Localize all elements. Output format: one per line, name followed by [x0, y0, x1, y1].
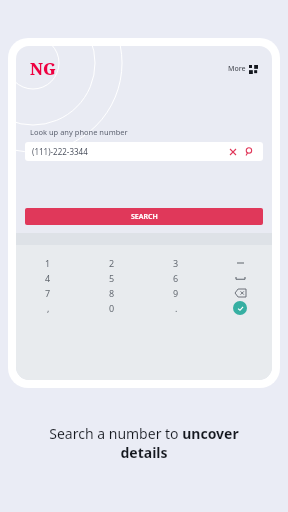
staticText: More: [228, 64, 246, 74]
staticText: 6: [173, 272, 179, 284]
button[interactable]: Space: [208, 270, 272, 285]
button[interactable]: 5: [80, 270, 144, 285]
staticText: 5: [109, 272, 115, 284]
button[interactable]: (111)-222-3344: [25, 142, 263, 161]
button[interactable]: 0: [80, 300, 144, 315]
button[interactable]: 3: [144, 255, 208, 270]
staticText: 2: [109, 257, 115, 269]
staticText: 0: [109, 302, 115, 314]
button[interactable]: 1: [16, 255, 80, 270]
staticText: NG: [30, 58, 56, 80]
staticText: .: [175, 302, 178, 314]
staticText: 7: [45, 287, 51, 299]
other: Backspace: [232, 285, 248, 300]
button[interactable]: 7: [16, 285, 80, 300]
staticText: 8: [109, 287, 115, 299]
button[interactable]: 8: [80, 285, 144, 300]
staticText: Search a number to uncover details: [24, 424, 264, 462]
other: Dash: [233, 256, 247, 270]
button[interactable]: Clear: [227, 146, 239, 158]
button[interactable]: 9: [144, 285, 208, 300]
staticText: Look up any phone number: [30, 127, 128, 137]
button[interactable]: Search: [243, 145, 256, 158]
button[interactable]: .: [144, 300, 208, 315]
staticText: 1: [45, 257, 51, 269]
staticText: 4: [45, 272, 51, 284]
button[interactable]: More: [225, 61, 261, 77]
button[interactable]: 4: [16, 270, 80, 285]
other: Space: [232, 270, 248, 285]
staticText: 3: [173, 257, 179, 269]
button[interactable]: 6: [144, 270, 208, 285]
staticText: 9: [173, 287, 179, 299]
staticText: SEARCH: [131, 212, 158, 222]
staticText: (111)-222-3344: [32, 146, 88, 157]
button[interactable]: Confirm: [208, 300, 272, 315]
staticText: ,: [47, 302, 50, 314]
other: Confirm: [233, 301, 247, 315]
button[interactable]: Backspace: [208, 285, 272, 300]
button[interactable]: ,: [16, 300, 80, 315]
button[interactable]: Dash: [208, 255, 272, 270]
button[interactable]: SEARCH: [25, 208, 263, 225]
button[interactable]: 2: [80, 255, 144, 270]
